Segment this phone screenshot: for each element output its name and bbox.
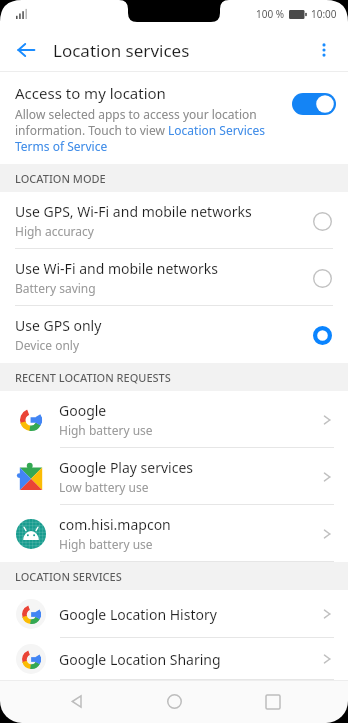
staticText: LOCATION SERVICES: [15, 569, 122, 584]
staticText: 100 %: [256, 7, 285, 21]
staticText: 10:00: [311, 7, 337, 21]
staticText: LOCATION MODE: [15, 171, 106, 186]
staticText: Use GPS only: [15, 316, 102, 335]
button[interactable]: Google Location History: [0, 590, 348, 638]
staticText: RECENT LOCATION REQUESTS: [15, 370, 171, 385]
staticText: Battery saving: [15, 280, 96, 296]
staticText: Location services: [53, 39, 190, 62]
staticText: Google: [59, 401, 107, 420]
button[interactable]: Google Play services: [0, 448, 348, 505]
button[interactable]: Google Location Sharing: [0, 638, 348, 680]
staticText: Use GPS, Wi-Fi and mobile networks: [15, 202, 252, 221]
button[interactable]: More options: [306, 32, 342, 68]
staticText: High battery use: [59, 536, 153, 552]
button[interactable]: Home: [151, 680, 197, 723]
staticText: Google Location Sharing: [59, 650, 221, 669]
staticText: Google Location History: [59, 605, 217, 624]
staticText: Device only: [15, 337, 80, 353]
staticText: Google Play services: [59, 458, 194, 477]
staticText: Access to my location: [15, 83, 166, 103]
button[interactable]: Back: [53, 680, 99, 723]
button[interactable]: Access to my location toggle: [292, 93, 336, 115]
staticText: com.hisi.mapcon: [59, 515, 171, 534]
button[interactable]: Google: [0, 391, 348, 448]
staticText: Use Wi-Fi and mobile networks: [15, 259, 218, 278]
button[interactable]: Access to my location: [0, 72, 348, 164]
button[interactable]: com.hisi.mapcon: [0, 505, 348, 562]
staticText: Allow selected apps to access your locat…: [15, 106, 282, 154]
staticText: Low battery use: [59, 479, 149, 495]
button[interactable]: Recent apps: [250, 680, 296, 723]
staticText: High battery use: [59, 422, 153, 438]
button[interactable]: Use Wi-Fi and mobile networks: [0, 249, 348, 306]
button[interactable]: Back: [8, 32, 44, 68]
staticText: High accuracy: [15, 223, 94, 239]
button[interactable]: Use GPS, Wi-Fi and mobile networks: [0, 192, 348, 249]
button[interactable]: Use GPS only: [0, 306, 348, 363]
